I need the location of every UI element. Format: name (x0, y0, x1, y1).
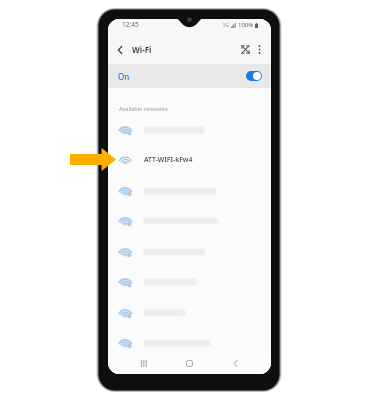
button[interactable] (108, 327, 271, 358)
button[interactable] (108, 175, 271, 206)
button[interactable]: Back (223, 353, 248, 374)
button[interactable]: Home (177, 353, 202, 374)
staticText: On (118, 71, 130, 82)
button[interactable]: Back (111, 41, 128, 58)
button[interactable] (108, 236, 271, 267)
button[interactable]: More options (251, 41, 268, 58)
button[interactable]: Wi-Fi Direct (237, 41, 254, 58)
button[interactable] (108, 205, 271, 236)
staticText: ATT-WIFI-kFw4 (144, 155, 193, 164)
staticText: 5G (223, 22, 229, 28)
button[interactable] (108, 114, 271, 145)
button[interactable]: On (108, 64, 271, 88)
button[interactable] (108, 266, 271, 297)
button[interactable]: ATT-WIFI-kFw4 (108, 144, 271, 175)
staticText: 100% (238, 21, 254, 29)
staticText: Wi-Fi (132, 44, 152, 55)
staticText: 12:45 (122, 20, 139, 29)
button[interactable]: Recent apps (132, 353, 157, 374)
staticText: Available networks (119, 105, 168, 112)
button[interactable] (108, 297, 271, 328)
